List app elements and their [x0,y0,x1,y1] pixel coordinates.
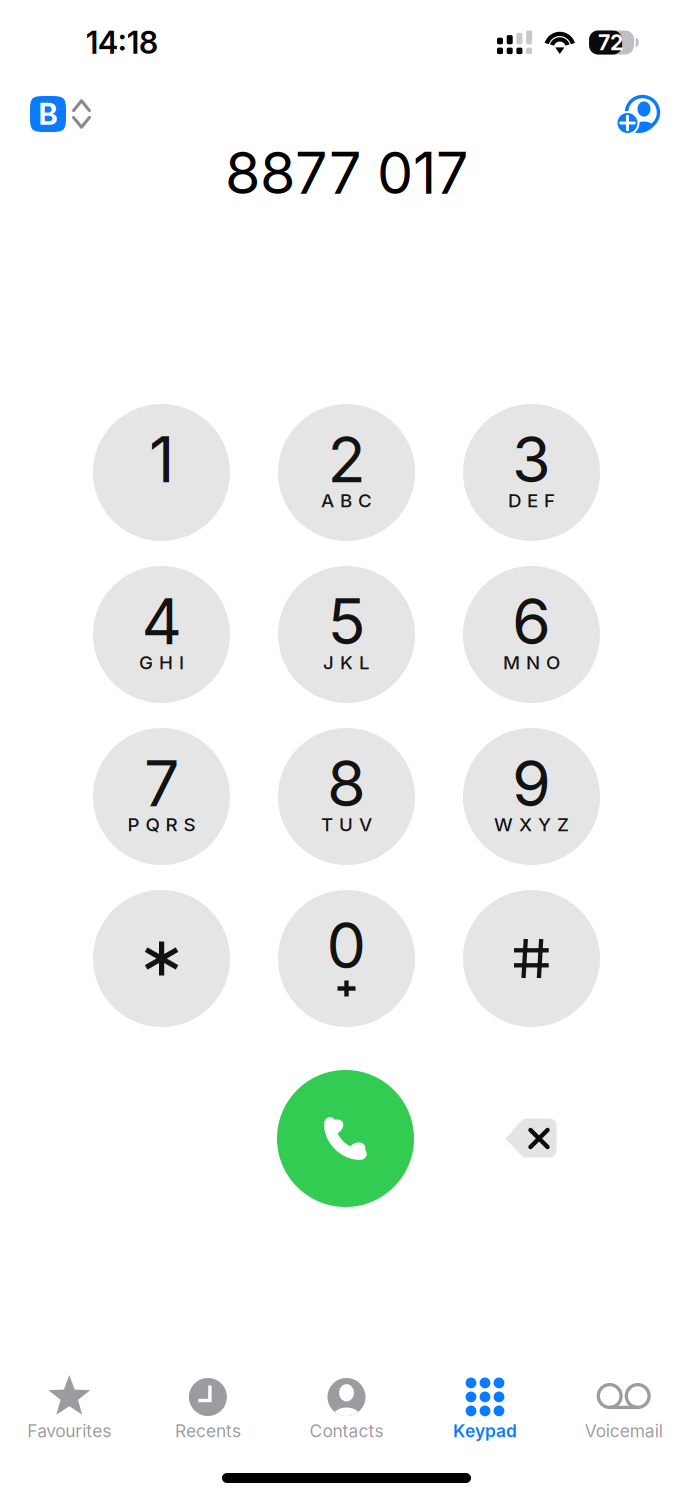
staticText: P Q R S [127,813,195,836]
staticText: B [38,96,57,132]
button[interactable]: 2 [278,404,415,541]
staticText: 8 [327,746,366,821]
button[interactable]: 8 [278,728,415,865]
button[interactable]: Voicemail [554,1374,693,1460]
button[interactable]: Select line B [0,91,91,137]
staticText: A B C [321,489,372,512]
staticText: W X Y Z [494,813,569,836]
staticText: 14:18 [86,24,158,61]
button[interactable] [463,890,600,1027]
staticText: 2 [327,422,365,497]
staticText: M N O [503,651,560,674]
staticText: 9 [512,746,551,821]
button[interactable]: Delete [462,1070,599,1207]
button[interactable]: Contacts [277,1374,416,1460]
staticText: J K L [323,651,370,674]
staticText: 4 [141,584,181,659]
staticText: Recents [175,1420,241,1441]
staticText: 6 [512,584,551,659]
button[interactable]: Recents [139,1374,277,1460]
button[interactable]: 7 [93,728,230,865]
staticText: 1 [149,422,174,497]
staticText: Voicemail [585,1420,663,1441]
button[interactable]: Keypad [416,1374,554,1460]
staticText: 3 [512,422,551,497]
button[interactable]: 5 [278,566,415,703]
staticText: Favourites [27,1420,111,1441]
staticText: D E F [508,489,555,512]
button[interactable]: 3 [463,404,600,541]
button[interactable]: Call [277,1070,414,1207]
button[interactable]: Favourites [0,1374,139,1460]
button[interactable]: 0 [278,890,415,1027]
staticText: G H I [139,651,184,674]
button[interactable]: Add Contact [618,90,693,138]
button[interactable]: 9 [463,728,600,865]
staticText: Keypad [453,1420,517,1441]
button[interactable]: 6 [463,566,600,703]
staticText: 7 [144,746,179,821]
button[interactable] [93,890,230,1027]
button[interactable]: 4 [93,566,230,703]
staticText: Contacts [309,1420,383,1441]
staticText: 0 [326,908,366,983]
staticText: 8877 017 [225,138,468,208]
button[interactable]: 1 [93,404,230,541]
staticText: 5 [327,584,365,659]
staticText: 72 [598,30,623,55]
staticText: T U V [321,813,372,836]
